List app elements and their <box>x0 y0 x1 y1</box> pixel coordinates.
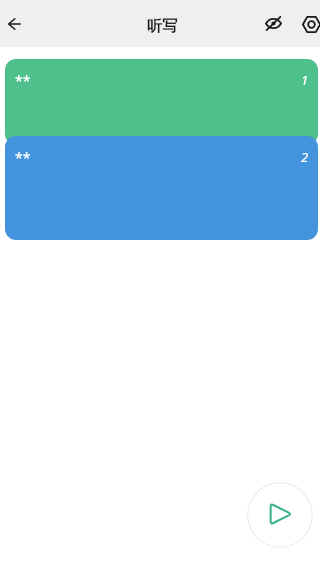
button[interactable]: ** <box>5 59 318 145</box>
staticText: ** <box>15 148 31 167</box>
button[interactable]: Hide answers <box>255 0 291 47</box>
staticText: 2 <box>301 148 309 166</box>
staticText: ** <box>15 71 31 90</box>
staticText: 听写 <box>147 17 177 36</box>
button[interactable]: Back <box>0 0 42 47</box>
button[interactable]: Play <box>247 482 313 548</box>
button[interactable]: Settings <box>292 0 320 47</box>
staticText: 1 <box>301 71 309 89</box>
button[interactable]: ** <box>5 136 318 240</box>
